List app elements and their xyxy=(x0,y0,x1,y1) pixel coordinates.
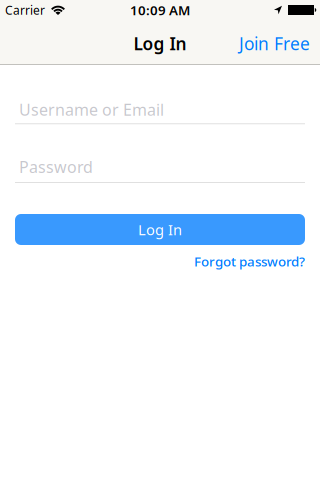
staticText: Log In xyxy=(133,32,186,55)
staticText: 10:09 AM xyxy=(130,1,190,19)
button[interactable]: Username or Email xyxy=(15,99,305,124)
button[interactable]: Password xyxy=(15,156,305,183)
button[interactable]: Join Free xyxy=(239,32,310,55)
staticText: Password xyxy=(19,156,93,177)
staticText: Username or Email xyxy=(19,99,164,120)
staticText: Carrier xyxy=(5,2,45,18)
button[interactable]: Forgot password? xyxy=(194,252,305,270)
button[interactable]: Log In xyxy=(15,214,305,245)
staticText: Forgot password? xyxy=(194,252,305,270)
staticText: Log In xyxy=(138,220,182,239)
staticText: Join Free xyxy=(239,32,310,55)
